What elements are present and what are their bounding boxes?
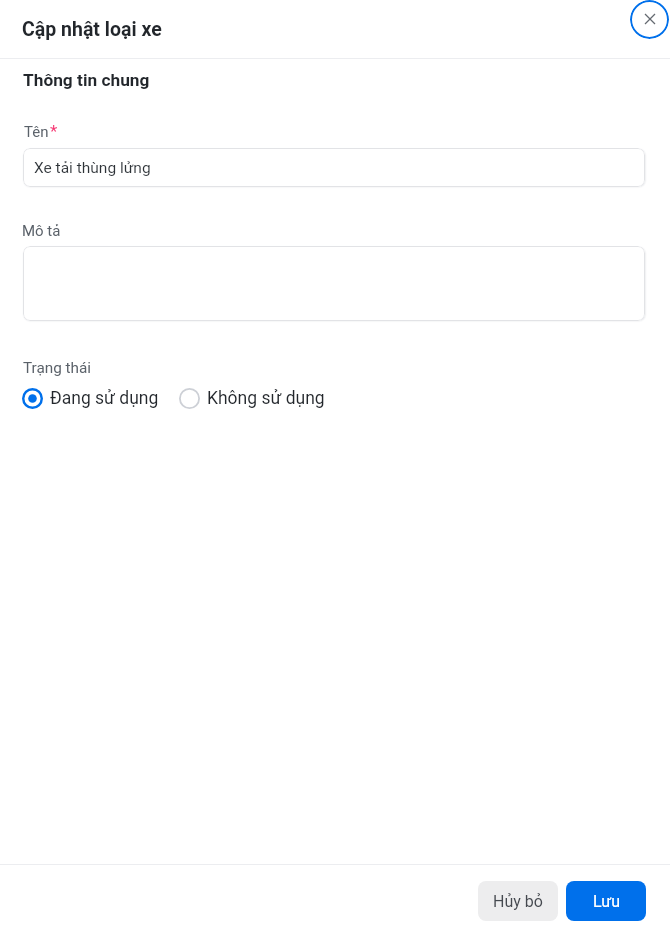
button[interactable]: Đang sử dụng bbox=[22, 388, 159, 409]
button[interactable]: Xe tải thùng lửng bbox=[23, 148, 645, 187]
button[interactable]: Lưu bbox=[566, 881, 646, 921]
staticText: Tên bbox=[24, 123, 49, 141]
staticText: Đang sử dụng bbox=[50, 388, 159, 409]
staticText: Không sử dụng bbox=[207, 388, 325, 409]
staticText: * bbox=[50, 121, 58, 141]
staticText: Mô tả bbox=[22, 222, 61, 240]
staticText: Trạng thái bbox=[23, 359, 92, 377]
staticText: Hủy bỏ bbox=[493, 892, 543, 911]
button[interactable]: Không sử dụng bbox=[179, 388, 325, 409]
button[interactable] bbox=[23, 246, 645, 321]
button[interactable]: Đóng bbox=[630, 0, 669, 39]
staticText: Xe tải thùng lửng bbox=[34, 159, 151, 177]
button[interactable]: Hủy bỏ bbox=[478, 881, 558, 921]
staticText: Cập nhật loại xe bbox=[22, 18, 162, 41]
staticText: Thông tin chung bbox=[23, 70, 150, 90]
staticText: Lưu bbox=[593, 892, 620, 911]
